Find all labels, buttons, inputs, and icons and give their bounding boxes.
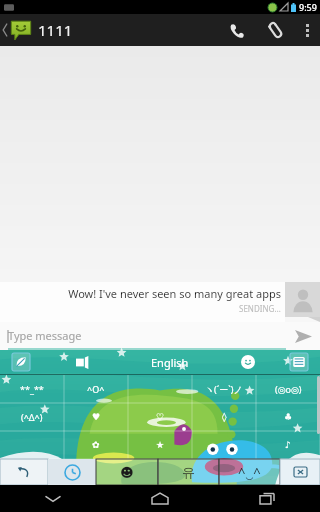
- staticText: 9:59: [299, 1, 317, 13]
- button[interactable]: ♡: [128, 403, 192, 431]
- staticText: 1111: [38, 20, 73, 40]
- button[interactable]: More options: [294, 14, 320, 46]
- button[interactable]: ♪: [256, 431, 320, 459]
- staticText: (◎o◎): [275, 383, 302, 395]
- button[interactable]: Recent apps: [213, 485, 320, 512]
- staticText: ♪: [285, 440, 291, 450]
- button[interactable]: ★: [128, 431, 192, 459]
- staticText: (^Δ^): [21, 411, 43, 423]
- button[interactable]: ^‿^: [219, 459, 280, 485]
- staticText: ♡: [156, 412, 165, 422]
- button[interactable]: ♥: [64, 403, 128, 431]
- staticText: ♥: [92, 412, 101, 422]
- staticText: ✿: [92, 440, 100, 450]
- button[interactable]: [0, 431, 64, 459]
- button[interactable]: Recent: [48, 459, 96, 485]
- button[interactable]: Home: [106, 485, 213, 512]
- button[interactable]: Back: [0, 14, 73, 46]
- button[interactable]: (^Δ^): [0, 403, 64, 431]
- staticText: 유: [182, 464, 195, 480]
- button[interactable]: ✿: [64, 431, 128, 459]
- staticText: ^O^: [87, 383, 105, 395]
- button[interactable]: 유: [158, 459, 219, 485]
- staticText: ★: [156, 440, 165, 450]
- button[interactable]: Sticker: [42, 350, 122, 374]
- button[interactable]: Send: [286, 322, 320, 350]
- other: Back: [2, 24, 8, 36]
- button[interactable]: (◎o◎): [256, 375, 320, 403]
- button[interactable]: [128, 375, 192, 403]
- button[interactable]: English: [122, 350, 218, 374]
- staticText: ◊: [222, 412, 227, 422]
- staticText: SENDING…: [239, 303, 281, 314]
- button[interactable]: Call: [218, 14, 256, 46]
- button[interactable]: Hide keyboard: [0, 485, 106, 512]
- staticText: ヽ(´ー`)ノ: [205, 383, 243, 395]
- button[interactable]: ヽ(´ー`)ノ: [192, 375, 256, 403]
- staticText: Wow! I've never seen so many great apps: [68, 286, 281, 301]
- button[interactable]: Delete: [280, 459, 320, 485]
- button[interactable]: Emoji: [218, 350, 278, 374]
- staticText: ☻: [120, 465, 134, 480]
- staticText: English: [151, 355, 189, 370]
- button[interactable]: ♣: [256, 403, 320, 431]
- button[interactable]: ☻: [96, 459, 158, 485]
- staticText: **_**: [20, 383, 44, 395]
- button[interactable]: Keyboard: [278, 350, 320, 374]
- button[interactable]: ^O^: [64, 375, 128, 403]
- button[interactable]: Theme: [0, 350, 42, 374]
- button[interactable]: ◊: [192, 403, 256, 431]
- staticText: Type message: [8, 328, 82, 343]
- button[interactable]: [192, 431, 256, 459]
- button[interactable]: Type message: [8, 322, 286, 350]
- button[interactable]: **_**: [0, 375, 64, 403]
- button[interactable]: Wow! I've never seen so many great apps: [0, 282, 320, 317]
- button[interactable]: Back: [0, 459, 48, 485]
- staticText: ^‿^: [238, 463, 261, 481]
- staticText: ♣: [284, 412, 293, 422]
- button[interactable]: Attach: [256, 14, 294, 46]
